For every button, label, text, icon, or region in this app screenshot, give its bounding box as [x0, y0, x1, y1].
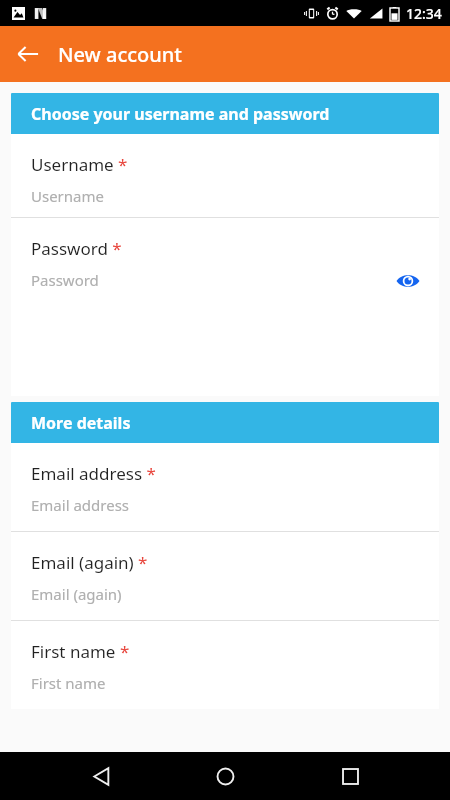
staticText: Email (again)	[31, 584, 122, 604]
staticText: New account	[58, 41, 182, 68]
button[interactable]: Back	[4, 30, 52, 78]
button[interactable]: First name *	[11, 621, 439, 709]
staticText: More details	[31, 412, 131, 434]
button[interactable]: Home	[201, 752, 249, 800]
staticText: Email address	[31, 495, 130, 515]
staticText: 12:34	[406, 4, 442, 23]
button[interactable]: Email address *	[11, 443, 439, 531]
staticText: Username *	[31, 153, 128, 176]
button[interactable]: Password *	[11, 218, 439, 396]
staticText: Email (again) *	[31, 551, 148, 574]
staticText: Username	[31, 186, 104, 206]
button[interactable]: Username *	[11, 134, 439, 217]
staticText: Password *	[31, 237, 122, 260]
button[interactable]: Recent apps	[326, 752, 374, 800]
staticText: Choose your username and password	[31, 103, 330, 125]
staticText: First name	[31, 673, 106, 693]
staticText: First name *	[31, 640, 130, 663]
button[interactable]: Email (again) *	[11, 532, 439, 620]
staticText: Email address *	[31, 462, 156, 485]
button[interactable]: Show password	[391, 264, 425, 298]
button[interactable]: Back	[77, 752, 125, 800]
staticText: Password	[31, 270, 99, 290]
